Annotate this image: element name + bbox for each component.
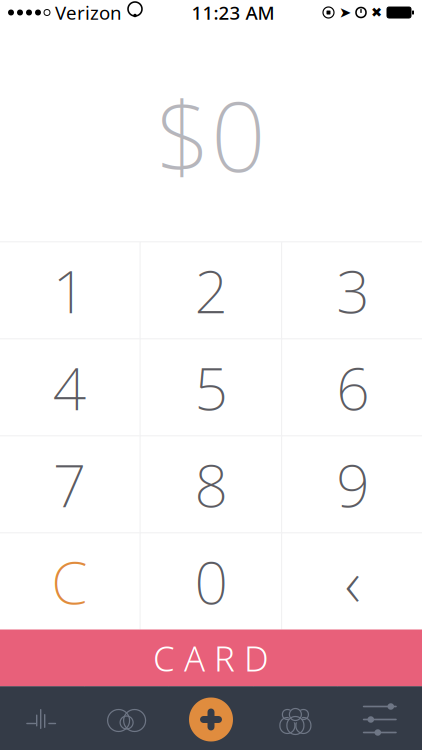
button[interactable]: 4: [0, 339, 140, 435]
button[interactable]: 3: [282, 242, 422, 338]
staticText: 11:23 AM: [191, 0, 274, 25]
button[interactable]: 5: [141, 339, 281, 435]
button[interactable]: 8: [141, 436, 281, 532]
button[interactable]: Activity: [0, 686, 84, 750]
staticText: 5: [194, 348, 227, 426]
staticText: ‹: [345, 537, 361, 626]
button[interactable]: 2: [141, 242, 281, 338]
staticText: ✖: [371, 5, 382, 20]
staticText: 2: [194, 251, 227, 329]
staticText: 3: [336, 251, 369, 329]
button[interactable]: ‹: [282, 533, 422, 629]
staticText: 9: [336, 445, 369, 523]
staticText: Verizon: [55, 0, 122, 25]
staticText: C: [51, 542, 87, 620]
button[interactable]: 9: [282, 436, 422, 532]
button[interactable]: Add: [169, 686, 253, 750]
staticText: 7: [53, 445, 86, 523]
staticText: $0: [156, 71, 266, 198]
staticText: 8: [194, 445, 227, 523]
staticText: 0: [194, 542, 227, 620]
staticText: C A R D: [153, 635, 269, 681]
button[interactable]: C: [0, 533, 140, 629]
button[interactable]: 0: [141, 533, 281, 629]
button[interactable]: Care: [84, 686, 169, 750]
staticText: ➤: [339, 4, 351, 21]
button[interactable]: Settings: [338, 686, 422, 750]
button[interactable]: People: [253, 686, 338, 750]
button[interactable]: 1: [0, 242, 140, 338]
staticText: 4: [53, 348, 86, 426]
staticText: 6: [336, 348, 369, 426]
button[interactable]: C A R D: [0, 629, 422, 686]
button[interactable]: 7: [0, 436, 140, 532]
staticText: 1: [53, 251, 86, 329]
button[interactable]: 6: [282, 339, 422, 435]
